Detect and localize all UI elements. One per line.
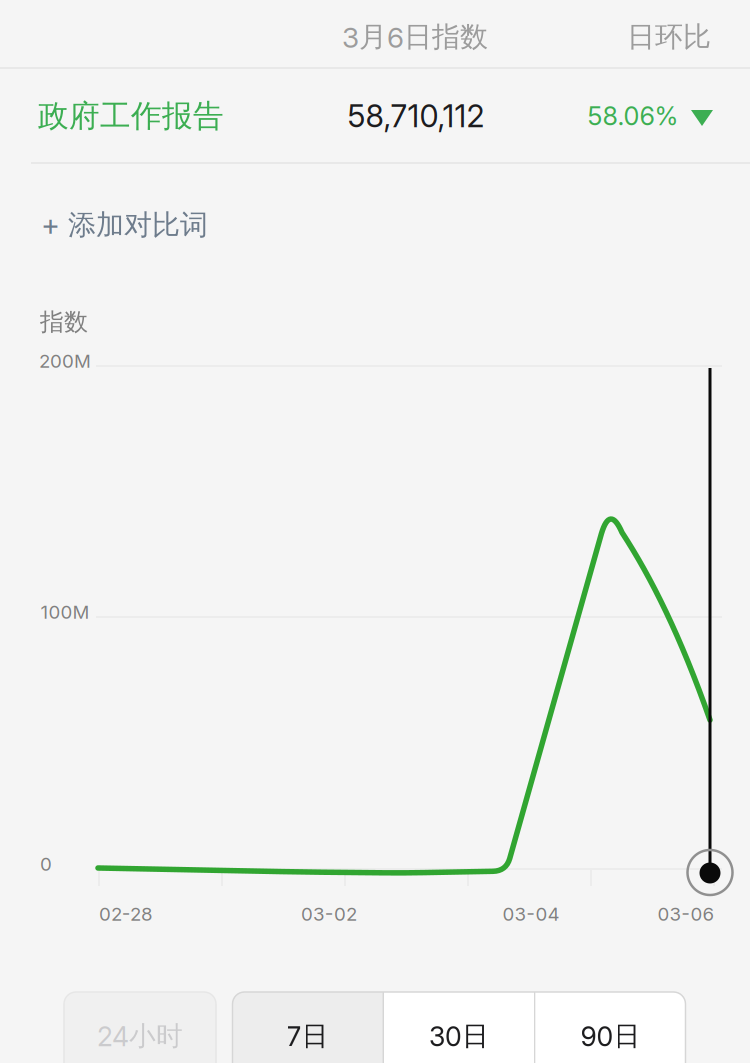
staticText: 指数 — [40, 307, 88, 337]
staticText: 政府工作报告 — [38, 97, 224, 135]
button[interactable]: 90日 — [535, 992, 685, 1063]
staticText: 03-04 — [502, 903, 559, 925]
staticText: 0 — [40, 853, 52, 875]
staticText: 7日 — [286, 1019, 328, 1053]
staticText: 02-28 — [99, 903, 153, 925]
staticText: 30日 — [429, 1019, 489, 1053]
staticText: 3月6日指数 — [342, 19, 488, 55]
button[interactable]: 7日 — [232, 992, 382, 1063]
staticText: 03-02 — [301, 903, 357, 925]
staticText: 58.06% — [587, 101, 678, 131]
staticText: 58,710,112 — [347, 97, 484, 134]
staticText: 日环比 — [627, 19, 711, 55]
staticText: 100M — [40, 601, 89, 623]
button[interactable]: 政府工作报告 — [0, 69, 298, 163]
staticText: 添加对比词 — [68, 207, 208, 243]
staticText: 03-06 — [657, 903, 714, 925]
button[interactable]: 30日 — [384, 992, 534, 1063]
staticText: 24小时 — [97, 1019, 183, 1053]
staticText: + — [41, 207, 60, 243]
button[interactable]: + — [0, 182, 320, 268]
staticText: 90日 — [580, 1019, 640, 1053]
button[interactable]: 24小时 — [64, 992, 216, 1063]
staticText: 200M — [39, 350, 91, 372]
